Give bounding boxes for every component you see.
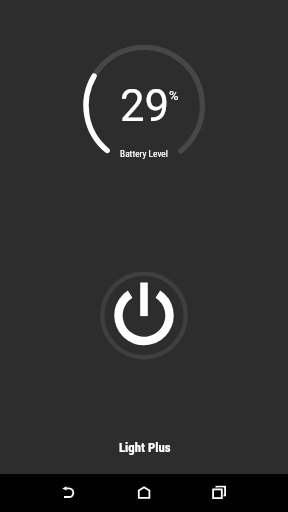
button[interactable]: Home [125,474,163,512]
staticText: Battery Level [120,148,168,159]
button[interactable]: Recents [199,474,237,512]
button[interactable]: Back [50,474,88,512]
button[interactable]: Power [100,271,188,359]
staticText: Light Plus [119,440,171,455]
staticText: 29 [120,80,170,131]
staticText: % [169,88,179,103]
